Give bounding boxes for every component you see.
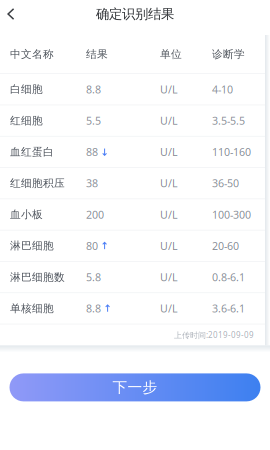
staticText: 诊断学 (212, 48, 245, 61)
staticText: 88 (86, 145, 98, 159)
staticText: U/L (160, 301, 178, 315)
staticText: 8.8 (86, 301, 101, 315)
staticText: 单核细胞 (10, 302, 54, 315)
staticText: 38 (86, 176, 98, 190)
staticText: 0.8-6.1 (212, 270, 245, 284)
staticText: U/L (160, 239, 178, 253)
staticText: 淋巴细胞数 (10, 270, 65, 284)
staticText: 4-10 (212, 82, 233, 96)
staticText: 中文名称 (10, 48, 54, 61)
staticText: 3.6-6.1 (212, 301, 245, 315)
staticText: U/L (160, 176, 178, 190)
staticText: 血红蛋白 (10, 145, 54, 158)
staticText: 淋巴细胞 (10, 239, 54, 252)
staticText: 白细胞 (10, 83, 43, 96)
staticText: 确定识别结果 (96, 6, 174, 22)
staticText: 血小板 (10, 208, 43, 221)
staticText: 结果 (86, 48, 108, 61)
button[interactable]: 返回 (0, 0, 22, 28)
staticText: 红细胞 (10, 114, 43, 127)
staticText: 红细胞积压 (10, 177, 65, 190)
staticText: 下一步 (112, 378, 157, 396)
staticText: U/L (160, 270, 178, 284)
staticText: U/L (160, 113, 178, 128)
staticText: 36-50 (212, 176, 239, 190)
staticText: 8.8 (86, 82, 101, 96)
staticText: 200 (86, 207, 104, 222)
staticText: 110-160 (212, 145, 251, 159)
staticText: 单位 (160, 48, 182, 61)
staticText: 5.8 (86, 270, 101, 284)
button[interactable]: 下一步 (9, 373, 260, 401)
staticText: U/L (160, 207, 178, 222)
staticText: 80 (86, 239, 98, 253)
staticText: U/L (160, 82, 178, 96)
staticText: 3.5-5.5 (212, 113, 245, 128)
staticText: U/L (160, 145, 178, 159)
staticText: 100-300 (212, 207, 251, 222)
staticText: 5.5 (86, 113, 101, 128)
staticText: 20-60 (212, 239, 239, 253)
staticText: 上传时间:2019-09-09 (174, 330, 254, 340)
